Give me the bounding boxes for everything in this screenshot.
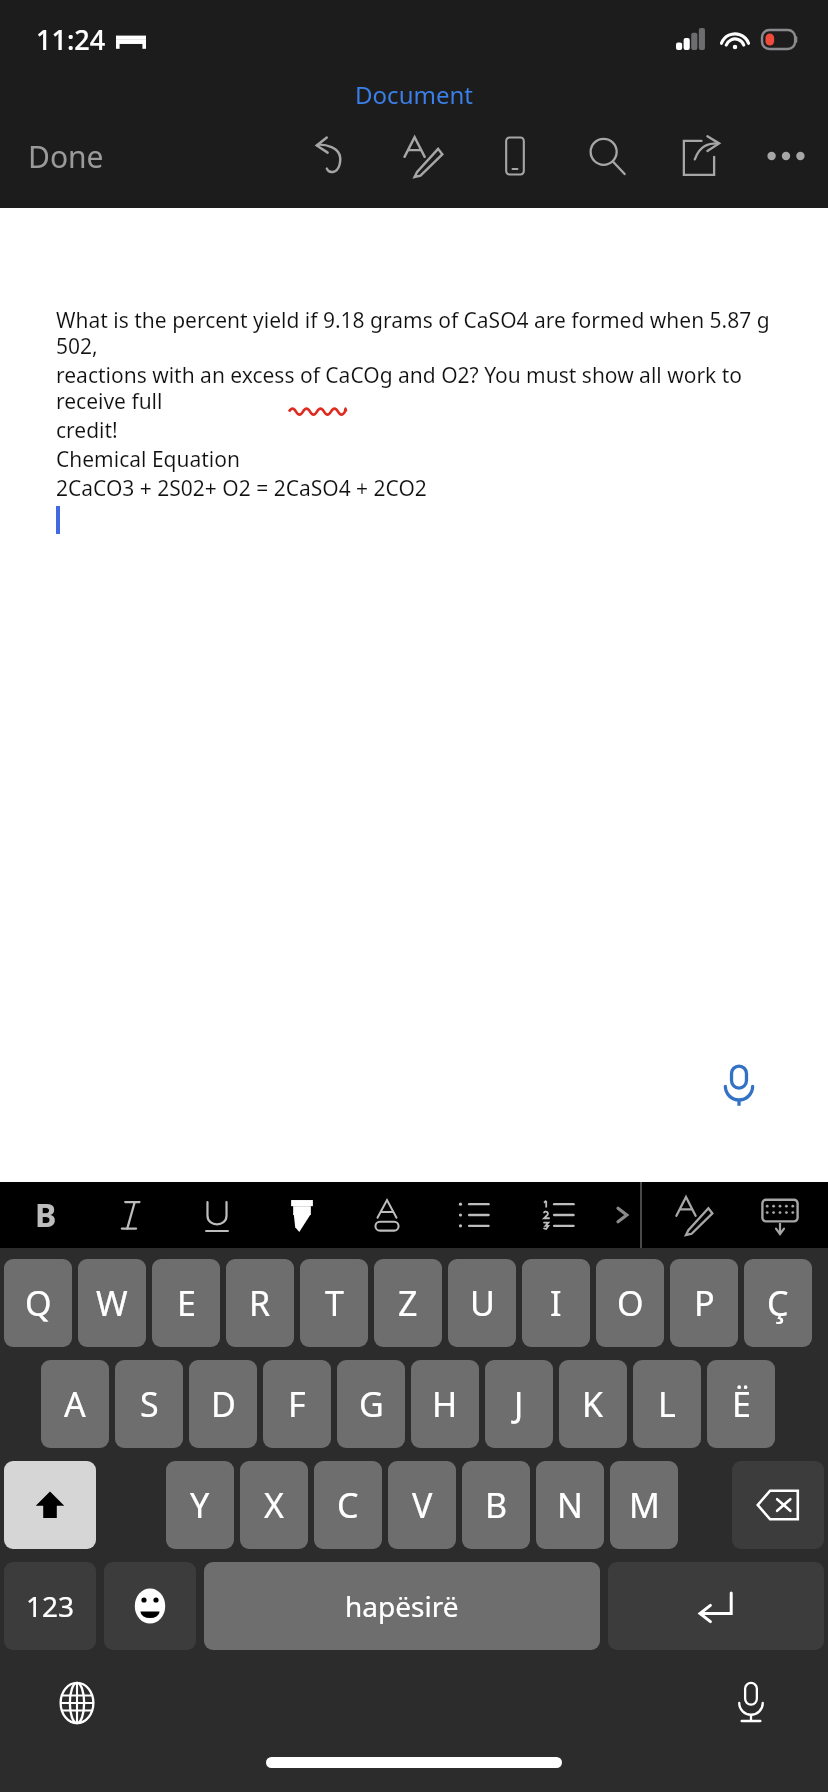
button[interactable]: D	[189, 1360, 257, 1448]
staticText: W	[96, 1280, 128, 1326]
staticText: 123	[26, 1587, 75, 1625]
button[interactable]: Emoji	[104, 1562, 196, 1650]
staticText: Chemical Equation	[56, 445, 240, 474]
staticText: O	[617, 1280, 644, 1326]
staticText: Ç	[767, 1280, 789, 1326]
staticText: B	[35, 1193, 57, 1237]
staticText: I	[550, 1280, 562, 1326]
button[interactable]: B	[462, 1461, 530, 1549]
staticText: A	[64, 1381, 86, 1427]
button[interactable]: hapësirë	[204, 1562, 600, 1650]
staticText: 11:24	[36, 21, 106, 58]
staticText: N	[557, 1482, 583, 1528]
staticText: S	[140, 1381, 159, 1427]
button[interactable]: N	[536, 1461, 604, 1549]
button[interactable]: J	[485, 1360, 553, 1448]
button[interactable]: Text color	[359, 1187, 415, 1243]
button[interactable]: Undo	[302, 127, 360, 185]
button[interactable]: Bulleted list	[444, 1187, 500, 1243]
staticText: Document	[0, 78, 828, 111]
button[interactable]: Ç	[744, 1259, 812, 1347]
button[interactable]: More	[758, 128, 814, 184]
button[interactable]: Numbered list	[529, 1187, 585, 1243]
button[interactable]: M	[610, 1461, 678, 1549]
button[interactable]: W	[78, 1259, 146, 1347]
button[interactable]: Backspace	[732, 1461, 824, 1549]
button[interactable]: Hide keyboard	[752, 1187, 808, 1243]
button[interactable]: Search	[578, 127, 636, 185]
button[interactable]: U	[448, 1259, 516, 1347]
button[interactable]: Markup	[394, 127, 452, 185]
button[interactable]: Highlight	[274, 1187, 330, 1243]
button[interactable]: S	[115, 1360, 183, 1448]
staticText: T	[325, 1280, 344, 1326]
button[interactable]: X	[240, 1461, 308, 1549]
staticText: U	[470, 1280, 495, 1326]
button[interactable]: Change keyboard	[42, 1668, 112, 1738]
button[interactable]: V	[388, 1461, 456, 1549]
staticText: Z	[398, 1280, 418, 1326]
staticText: hapësirë	[345, 1587, 459, 1625]
staticText: K	[582, 1381, 604, 1427]
button[interactable]: R	[226, 1259, 294, 1347]
staticText: 2CaCO3 + 2S02+ O2 = 2CaSO4 + 2CO2	[56, 474, 427, 503]
staticText: reactions with an excess of CaCOg and O2…	[56, 361, 788, 416]
button[interactable]: 123	[4, 1562, 96, 1650]
staticText: F	[288, 1381, 306, 1427]
button[interactable]: Share	[670, 127, 728, 185]
staticText: D	[211, 1381, 236, 1427]
button[interactable]: Bold	[18, 1187, 74, 1243]
button[interactable]: Underline	[189, 1187, 245, 1243]
staticText: V	[412, 1482, 433, 1528]
button[interactable]: L	[633, 1360, 701, 1448]
button[interactable]: Dictate	[682, 1028, 796, 1142]
button[interactable]: Italic	[104, 1187, 160, 1243]
button[interactable]: P	[670, 1259, 738, 1347]
staticText: credit!	[56, 416, 118, 445]
staticText: Ë	[732, 1381, 751, 1427]
button[interactable]: Ë	[707, 1360, 775, 1448]
button[interactable]: Markup	[666, 1187, 722, 1243]
staticText: M	[629, 1482, 660, 1528]
button[interactable]: Z	[374, 1259, 442, 1347]
staticText: R	[249, 1280, 271, 1326]
staticText: J	[514, 1381, 524, 1427]
button[interactable]: Dictation	[716, 1668, 786, 1738]
staticText: L	[658, 1381, 676, 1427]
button[interactable]: I	[522, 1259, 590, 1347]
button[interactable]: H	[411, 1360, 479, 1448]
button[interactable]: Shift	[4, 1461, 96, 1549]
button[interactable]: Y	[166, 1461, 234, 1549]
staticText: E	[177, 1280, 196, 1326]
button[interactable]: O	[596, 1259, 664, 1347]
staticText: X	[264, 1482, 284, 1528]
button[interactable]: E	[152, 1259, 220, 1347]
button[interactable]: Done	[20, 130, 112, 183]
staticText: C	[337, 1482, 359, 1528]
button[interactable]: Q	[4, 1259, 72, 1347]
staticText: Y	[190, 1482, 210, 1528]
button[interactable]: Layout	[486, 127, 544, 185]
staticText: Q	[25, 1280, 52, 1326]
staticText: P	[694, 1280, 715, 1326]
button[interactable]: F	[263, 1360, 331, 1448]
button[interactable]: T	[300, 1259, 368, 1347]
button[interactable]: C	[314, 1461, 382, 1549]
button[interactable]: K	[559, 1360, 627, 1448]
staticText: Done	[28, 136, 104, 177]
staticText: What is the percent yield if 9.18 grams …	[56, 306, 788, 361]
button[interactable]: Return	[608, 1562, 824, 1650]
staticText: B	[485, 1482, 508, 1528]
staticText: G	[359, 1381, 384, 1427]
staticText: H	[432, 1381, 458, 1427]
button[interactable]: G	[337, 1360, 405, 1448]
button[interactable]: A	[41, 1360, 109, 1448]
